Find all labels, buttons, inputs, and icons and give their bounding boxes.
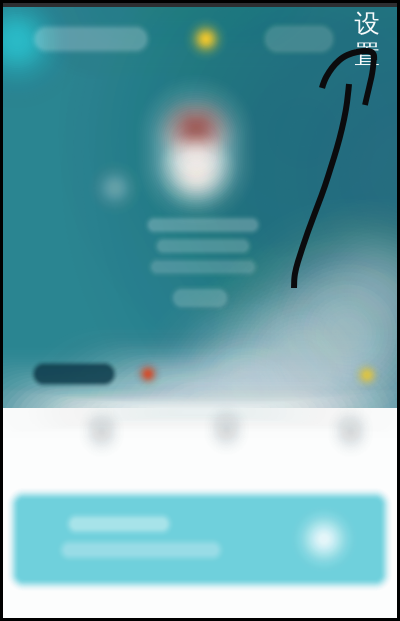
button[interactable]: Orders xyxy=(146,404,250,456)
button[interactable]: Sign in xyxy=(3,3,81,39)
button[interactable]: More xyxy=(3,3,67,31)
button[interactable]: 设置 xyxy=(345,27,389,51)
button[interactable]: Search xyxy=(3,3,127,38)
button[interactable]: Label xyxy=(3,3,93,33)
button[interactable]: Coins xyxy=(3,3,51,51)
button[interactable]: Promotion xyxy=(16,497,383,582)
button[interactable]: Profile xyxy=(270,406,374,458)
staticText: 设置 xyxy=(354,8,379,70)
button[interactable]: Home xyxy=(21,406,125,458)
